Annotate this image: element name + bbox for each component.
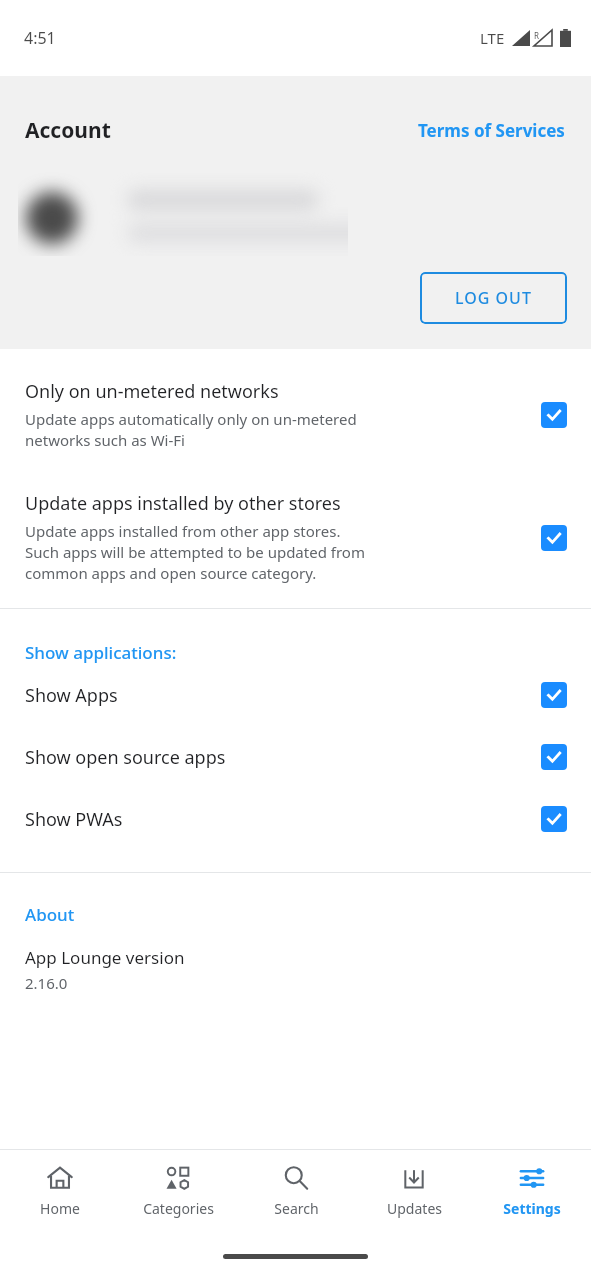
staticText: Account — [25, 116, 111, 145]
button[interactable]: Search — [237, 1150, 355, 1240]
other: Enabled — [541, 525, 567, 551]
button[interactable]: Categories — [119, 1150, 237, 1240]
button[interactable]: Show Apps — [0, 664, 591, 726]
staticText: Update apps installed by other stores — [25, 491, 341, 516]
other: Enabled — [541, 402, 567, 428]
staticText: Only on un-metered networks — [25, 379, 279, 404]
staticText: Show open source apps — [25, 745, 541, 770]
staticText: 2.16.0 — [25, 973, 68, 993]
staticText: Show Apps — [25, 683, 541, 708]
staticText: R — [534, 30, 539, 41]
staticText: Show PWAs — [25, 807, 541, 832]
button[interactable]: Updates — [355, 1150, 473, 1240]
staticText: Terms of Services — [418, 119, 565, 142]
button[interactable]: Only on un-metered networks — [0, 349, 591, 481]
button[interactable]: Terms of Services — [416, 117, 567, 144]
staticText: Updates — [387, 1199, 442, 1218]
other: Enabled — [541, 682, 567, 708]
staticText: Search — [274, 1199, 319, 1218]
staticText: Update apps automatically only on un-met… — [25, 409, 357, 451]
staticText: Settings — [503, 1199, 561, 1218]
button[interactable]: LOG OUT — [420, 272, 567, 324]
staticText: LOG OUT — [455, 287, 532, 309]
staticText: Update apps installed from other app sto… — [25, 521, 365, 584]
staticText: LTE — [480, 28, 505, 48]
staticText: Home — [40, 1199, 80, 1218]
staticText: Categories — [143, 1199, 214, 1218]
button[interactable]: Show open source apps — [0, 726, 591, 788]
other: Enabled — [541, 744, 567, 770]
button[interactable]: Settings — [473, 1150, 591, 1240]
staticText: 4:51 — [24, 27, 56, 49]
button[interactable]: Update apps installed by other stores — [0, 481, 591, 608]
button[interactable]: Show PWAs — [0, 788, 591, 850]
staticText: Show applications: — [25, 641, 177, 664]
staticText: App Lounge version — [25, 946, 185, 969]
staticText: About — [25, 903, 75, 926]
button[interactable]: Home — [0, 1150, 119, 1240]
other: Enabled — [541, 806, 567, 832]
